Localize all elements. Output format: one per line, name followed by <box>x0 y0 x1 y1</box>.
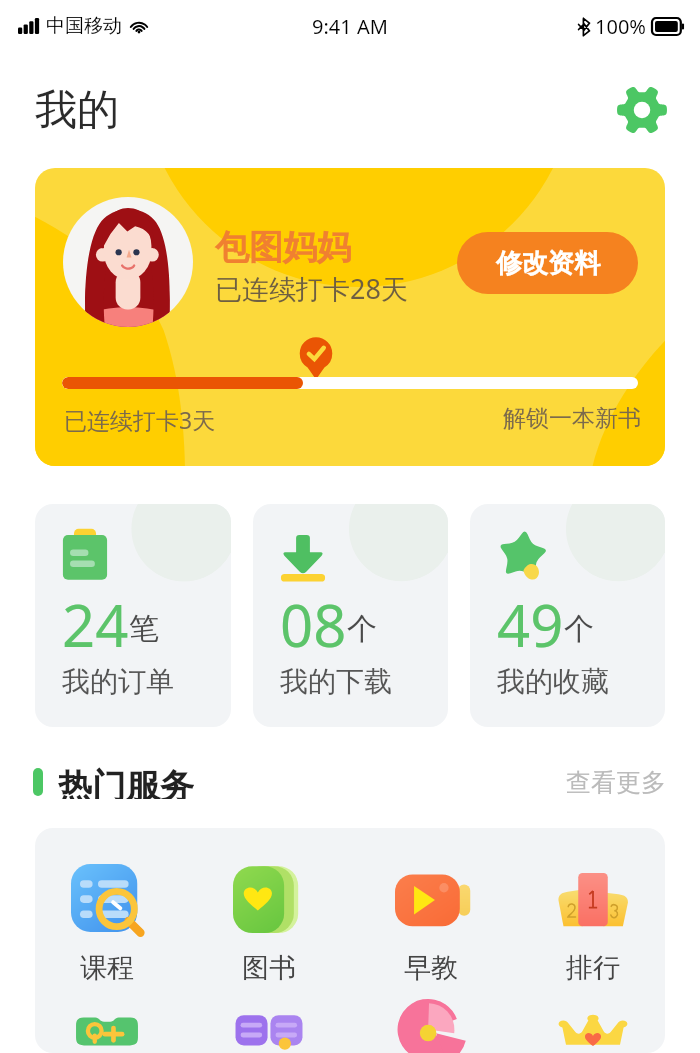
staticText: 早教 <box>404 951 458 985</box>
staticText: 24 <box>62 585 129 664</box>
staticText: 我的下载 <box>280 664 392 699</box>
button[interactable]: 49 <box>470 504 665 727</box>
button[interactable]: 名师 <box>47 1006 167 1053</box>
button[interactable]: 课程 <box>47 864 167 985</box>
button[interactable]: 会员 <box>533 1006 653 1053</box>
button[interactable]: 绘本 <box>209 1006 329 1053</box>
button[interactable]: 包图妈妈 <box>35 168 665 466</box>
button[interactable]: 24 <box>35 504 231 727</box>
button[interactable]: 查看更多 <box>566 767 666 798</box>
staticText: 我的收藏 <box>497 664 609 699</box>
staticText: 图书 <box>242 951 296 985</box>
staticText: 笔 <box>129 610 159 648</box>
button[interactable]: 图书 <box>209 864 329 985</box>
button[interactable]: 早教 <box>371 864 491 985</box>
button[interactable]: Settings <box>617 85 667 135</box>
staticText: 49 <box>497 585 564 664</box>
staticText: 课程 <box>80 951 134 985</box>
staticText: 08 <box>280 585 347 664</box>
staticText: 我的订单 <box>62 664 174 699</box>
staticText: 个 <box>564 610 594 648</box>
staticText: 我的 <box>35 84 119 137</box>
staticText: 修改资料 <box>496 247 600 280</box>
staticText: 9:41 AM <box>312 13 388 40</box>
staticText: 包图妈妈 <box>215 226 351 269</box>
staticText: 100% <box>595 13 646 40</box>
staticText: 查看更多 <box>566 767 666 798</box>
staticText: 中国移动 <box>46 14 122 38</box>
button[interactable]: 修改资料 <box>457 232 638 294</box>
staticText: 解锁一本新书 <box>503 404 641 433</box>
staticText: 个 <box>347 610 377 648</box>
button[interactable]: 08 <box>253 504 448 727</box>
staticText: 已连续打卡3天 <box>64 404 216 435</box>
staticText: 排行 <box>566 951 620 985</box>
staticText: 已连续打卡28天 <box>215 270 408 307</box>
staticText: 热门服务 <box>58 765 194 799</box>
button[interactable]: 排行 <box>533 864 653 985</box>
button[interactable]: 活动 <box>371 1006 491 1053</box>
